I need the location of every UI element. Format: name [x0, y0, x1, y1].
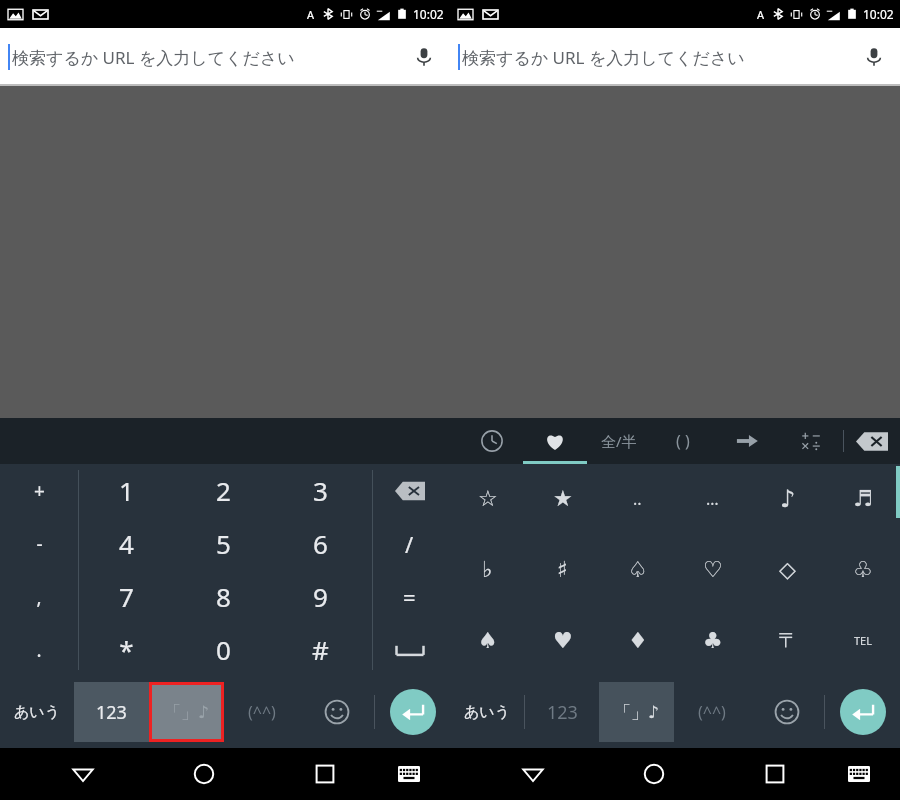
button[interactable]: Home	[630, 750, 678, 798]
button[interactable]: ♪	[750, 464, 825, 534]
button[interactable]: (^^)	[674, 682, 749, 742]
button[interactable]: *	[78, 623, 175, 676]
button[interactable]: 0	[175, 623, 272, 676]
button[interactable]: Symbols	[523, 418, 587, 464]
button[interactable]: 8	[175, 570, 272, 623]
button[interactable]: ♬	[825, 464, 900, 534]
button[interactable]: Voice search	[856, 39, 892, 75]
button[interactable]: 7	[78, 570, 175, 623]
staticText: (^^)	[698, 701, 726, 723]
button[interactable]: Recent	[460, 418, 523, 464]
button[interactable]: Back	[59, 750, 107, 798]
button[interactable]: ( )	[651, 418, 715, 464]
button[interactable]: =	[369, 570, 450, 623]
staticText: …	[706, 488, 719, 510]
button[interactable]: Emoji	[749, 676, 824, 748]
button[interactable]: /	[369, 517, 450, 570]
button[interactable]: Voice search	[406, 39, 442, 75]
button[interactable]: あいう	[450, 682, 524, 742]
button[interactable]: 検索するか URL を入力してください	[450, 28, 900, 86]
button[interactable]: ♭	[450, 534, 525, 605]
staticText: =	[403, 582, 416, 612]
button[interactable]: Enter	[825, 676, 900, 748]
button[interactable]: あいう	[0, 682, 74, 742]
staticText: 〒	[778, 628, 798, 653]
button[interactable]: ♡	[675, 534, 750, 605]
staticText: 「」♪	[614, 702, 659, 723]
staticText: ☆	[478, 486, 498, 512]
button[interactable]: #	[272, 623, 369, 676]
staticText: 「」♪	[164, 702, 209, 723]
button[interactable]: 4	[78, 517, 175, 570]
button[interactable]: 「」♪	[599, 682, 674, 742]
button[interactable]: Recents	[751, 750, 799, 798]
button[interactable]: 5	[175, 517, 272, 570]
button[interactable]: 1	[78, 464, 175, 517]
staticText: ,	[36, 584, 42, 610]
button[interactable]: ♣	[675, 605, 750, 676]
button[interactable]: Switch keyboard	[385, 750, 433, 798]
button[interactable]: 検索するか URL を入力してください	[0, 28, 450, 86]
staticText: 4	[119, 526, 134, 561]
staticText: ♣	[703, 628, 723, 654]
button[interactable]: 6	[272, 517, 369, 570]
staticText: あいう	[14, 703, 61, 722]
staticText: 7	[119, 579, 134, 614]
button[interactable]: 「」♪	[149, 682, 224, 742]
staticText: 5	[216, 526, 231, 561]
staticText: 検索するか URL を入力してください	[462, 46, 745, 69]
staticText: 検索するか URL を入力してください	[12, 46, 295, 69]
button[interactable]: Emoji	[299, 676, 374, 748]
staticText: 6	[313, 526, 328, 561]
button[interactable]: ♥	[525, 605, 600, 676]
button[interactable]: Enter	[375, 676, 450, 748]
button[interactable]: ♯	[525, 534, 600, 605]
staticText: 123	[96, 700, 127, 725]
button[interactable]: ,	[0, 570, 78, 623]
button[interactable]: Home	[180, 750, 228, 798]
staticText: A	[757, 7, 765, 22]
button[interactable]: ♧	[825, 534, 900, 605]
button[interactable]: +	[0, 464, 78, 517]
staticText: +	[34, 478, 45, 504]
staticText: 10:02	[413, 6, 444, 22]
staticText: ♠	[478, 628, 498, 654]
button[interactable]: ‥	[600, 464, 675, 534]
staticText: 全/半	[601, 431, 637, 451]
staticText: -	[36, 531, 43, 557]
button[interactable]: 2	[175, 464, 272, 517]
button[interactable]: ␣	[369, 623, 450, 676]
button[interactable]: 全/半	[587, 418, 651, 464]
button[interactable]: Recents	[301, 750, 349, 798]
staticText: ♡	[703, 557, 723, 583]
button[interactable]: Backspace	[844, 418, 900, 464]
button[interactable]: Arrows	[715, 418, 779, 464]
button[interactable]: ♠	[450, 605, 525, 676]
staticText: 1	[119, 473, 134, 508]
button[interactable]: ⌫	[369, 464, 450, 517]
button[interactable]: Math	[779, 418, 843, 464]
button[interactable]: ◇	[750, 534, 825, 605]
button[interactable]: …	[675, 464, 750, 534]
button[interactable]: Switch keyboard	[835, 750, 883, 798]
staticText: ♪	[780, 485, 796, 513]
button[interactable]: 123	[525, 682, 599, 742]
button[interactable]: Back	[509, 750, 557, 798]
button[interactable]: -	[0, 517, 78, 570]
button[interactable]: 〒	[750, 605, 825, 676]
staticText: #	[312, 632, 329, 667]
staticText: 123	[547, 700, 578, 725]
button[interactable]: ☆	[450, 464, 525, 534]
button[interactable]: 3	[272, 464, 369, 517]
button[interactable]: TEL	[825, 605, 900, 676]
staticText: TEL	[854, 633, 872, 648]
staticText: ★	[553, 486, 573, 512]
staticText: ( )	[676, 430, 690, 452]
button[interactable]: 123	[74, 682, 149, 742]
button[interactable]: ♦	[600, 605, 675, 676]
button[interactable]: 9	[272, 570, 369, 623]
button[interactable]: (^^)	[224, 682, 299, 742]
button[interactable]: .	[0, 623, 78, 676]
button[interactable]: ★	[525, 464, 600, 534]
button[interactable]: ♤	[600, 534, 675, 605]
